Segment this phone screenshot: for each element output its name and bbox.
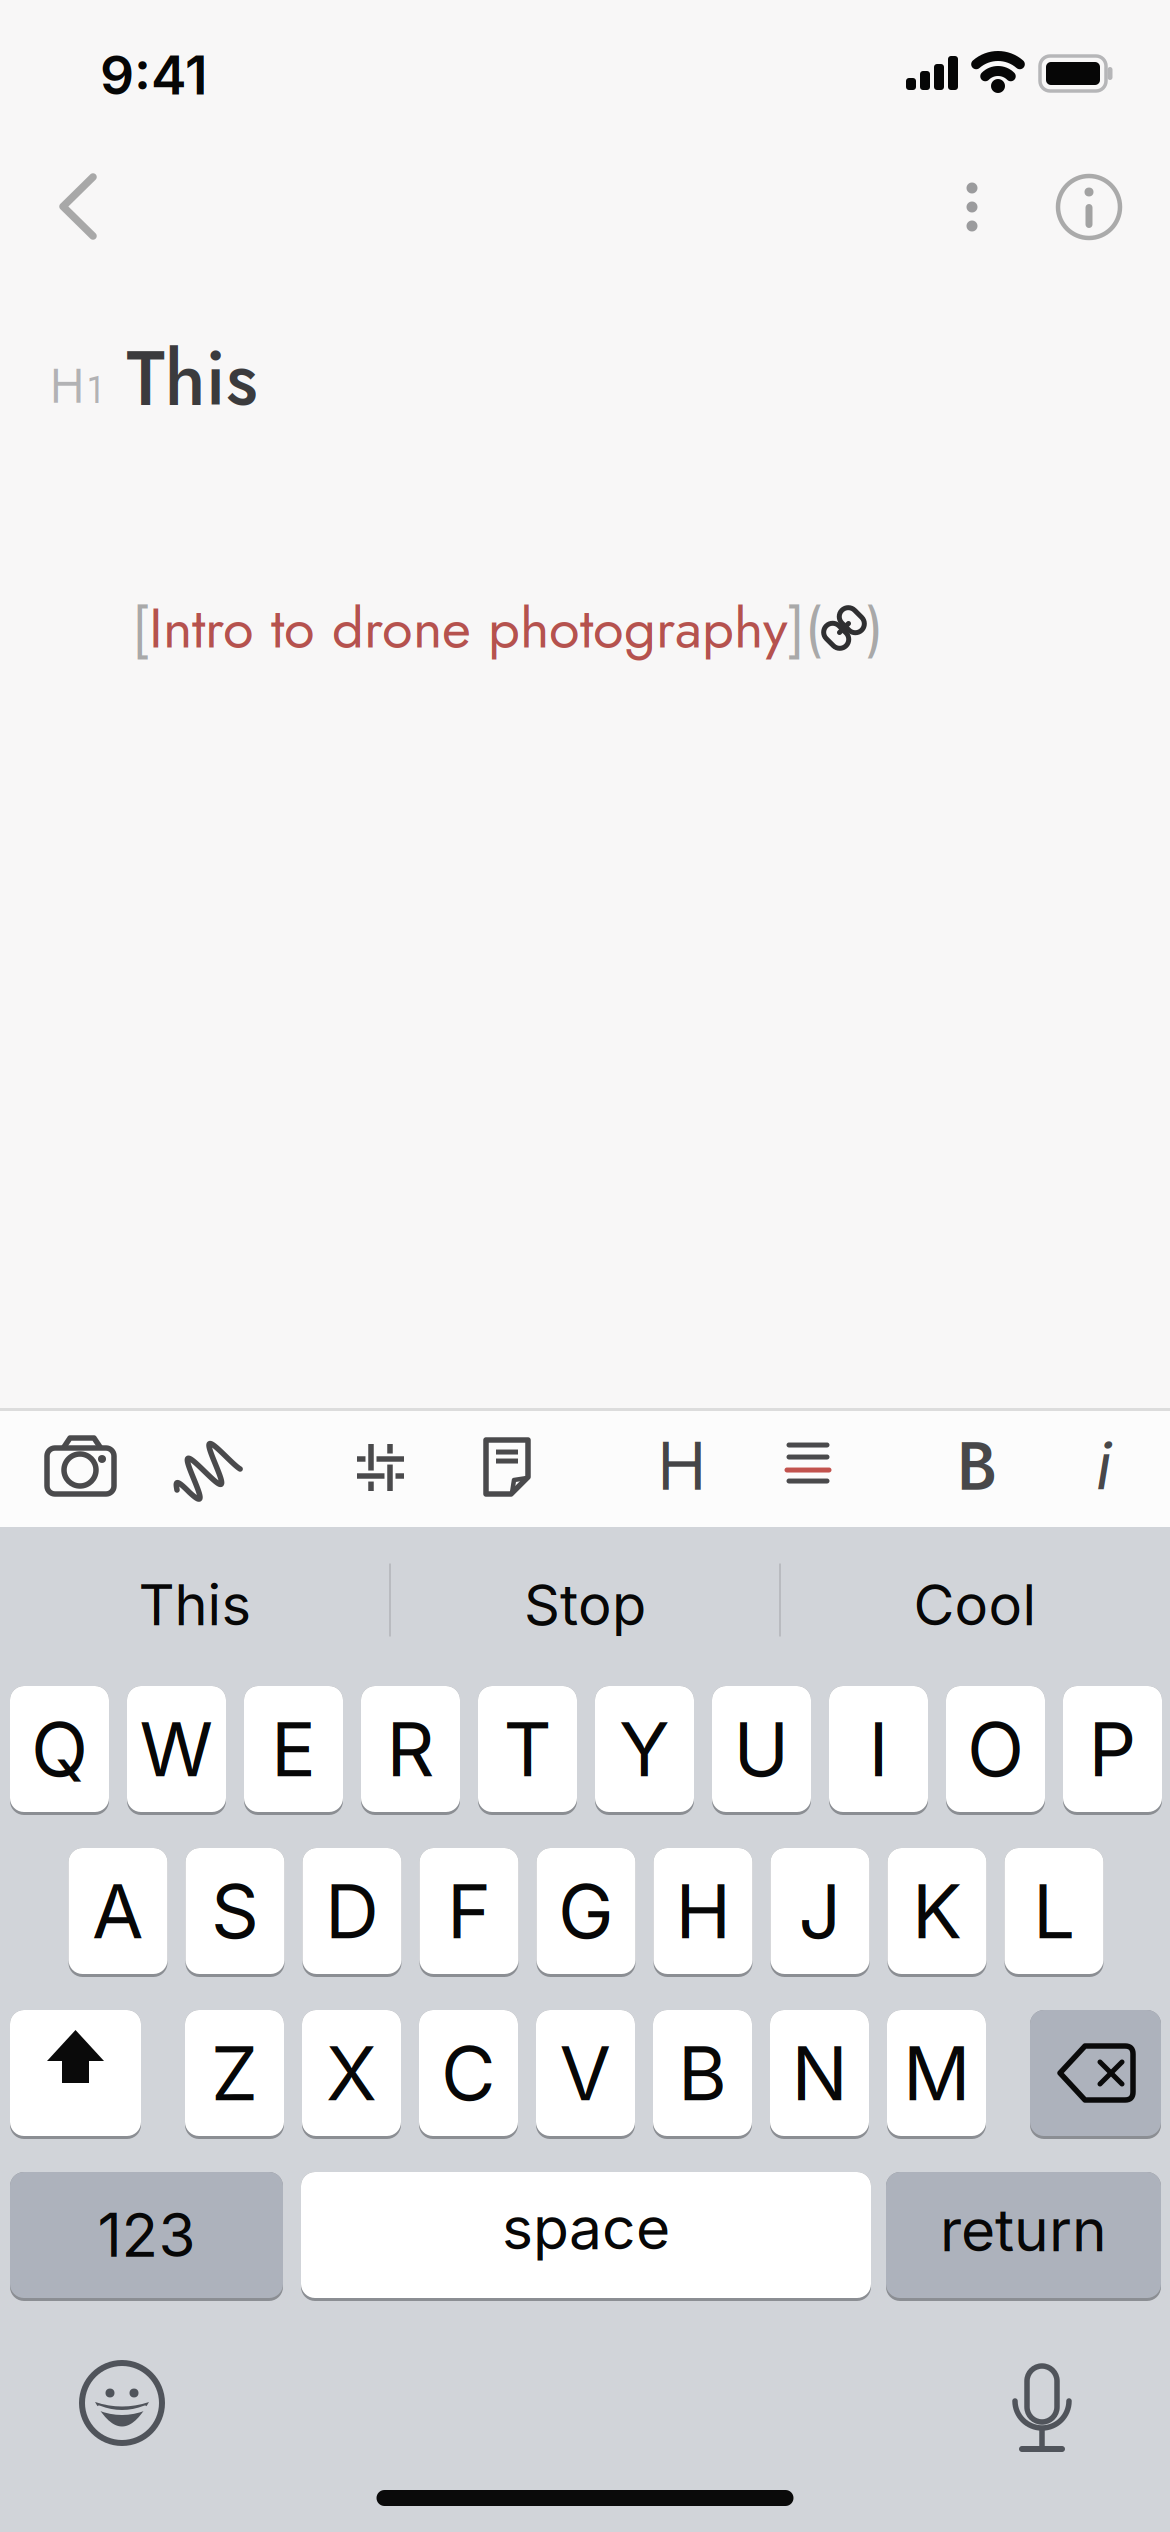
staticText: T [503,1704,551,1794]
staticText: G [558,1866,614,1956]
button[interactable]: Italic [1074,1434,1134,1498]
button[interactable]: Stop [395,1549,775,1661]
button[interactable]: Cool [785,1549,1165,1661]
staticText: E [271,1704,316,1794]
button[interactable]: P [1063,1686,1162,1815]
staticText: ( [805,587,822,668]
staticText: Q [31,1704,88,1794]
button[interactable]: U [712,1686,811,1815]
staticText: [ [132,587,149,668]
button[interactable]: C [419,2010,518,2139]
staticText: Cool [913,1571,1036,1639]
button[interactable]: A [68,1848,167,1977]
staticText: 9:41 [100,43,208,107]
button[interactable]: B [653,2010,752,2139]
staticText: ] [788,587,805,668]
staticText: U [733,1704,789,1794]
staticText: J [798,1866,841,1956]
button[interactable]: H [653,1848,752,1977]
button[interactable]: F [419,1848,518,1977]
button[interactable]: List [770,1436,846,1500]
staticText: F [447,1866,491,1956]
button[interactable]: X [302,2010,401,2139]
button[interactable]: Dictate [1002,2355,1082,2455]
button[interactable]: W [127,1686,226,1815]
button[interactable]: E [244,1686,343,1815]
button[interactable]: Sketch [166,1436,242,1500]
button[interactable]: space [301,2172,871,2301]
staticText: V [559,2028,611,2118]
staticText: Z [211,2028,258,2118]
staticText: This [138,1571,251,1639]
button[interactable]: Emoji [72,2353,172,2453]
button[interactable]: K [887,1848,986,1977]
button[interactable]: Bold [939,1434,1015,1498]
staticText: space [502,2192,670,2263]
staticText: Y [619,1704,670,1794]
button[interactable]: R [361,1686,460,1815]
staticText: Intro to drone photography [149,587,788,668]
staticText: H [657,1417,706,1515]
button[interactable]: N [770,2010,869,2139]
button[interactable]: More [950,169,994,245]
button[interactable]: D [302,1848,401,1977]
button[interactable]: Info [1051,169,1127,245]
staticText: Stop [524,1571,646,1639]
staticText: H [675,1866,730,1956]
staticText: P [1088,1704,1136,1794]
button[interactable]: J [770,1848,869,1977]
button[interactable]: return [886,2172,1161,2301]
staticText: X [326,2028,377,2118]
staticText: L [1033,1866,1075,1956]
staticText: W [139,1704,213,1794]
button[interactable]: Note options [469,1435,545,1499]
button[interactable]: This [5,1549,385,1661]
button[interactable]: Shift [10,2010,141,2139]
button[interactable]: I [829,1686,928,1815]
button[interactable]: S [185,1848,284,1977]
button[interactable]: T [478,1686,577,1815]
button[interactable]: M [887,2010,986,2139]
staticText: i [1096,1427,1112,1505]
staticText: 123 [97,2199,195,2271]
staticText: A [92,1866,144,1956]
button[interactable]: Q [10,1686,109,1815]
staticText: M [903,2028,970,2118]
staticText: S [211,1866,259,1956]
staticText: I [868,1704,888,1794]
button[interactable]: V [536,2010,635,2139]
button[interactable]: L [1004,1848,1103,1977]
button[interactable]: G [536,1848,635,1977]
staticText: ) [866,587,883,668]
staticText: B [956,1417,997,1515]
button[interactable]: 123 [10,2172,283,2301]
staticText: R [386,1704,434,1794]
button[interactable]: Style options [344,1436,420,1500]
staticText: B [678,2028,727,2118]
staticText: D [325,1866,379,1956]
staticText: 1 [86,363,103,417]
button[interactable]: Y [595,1686,694,1815]
staticText: O [967,1704,1024,1794]
button[interactable]: Insert photo [44,1435,120,1499]
staticText: This [126,323,257,433]
button[interactable]: Back [47,167,109,247]
staticText: K [912,1866,962,1956]
staticText: return [940,2194,1107,2265]
staticText: C [441,2028,496,2118]
button[interactable]: Delete [1030,2010,1161,2139]
staticText: H [50,351,84,421]
staticText: N [791,2028,847,2118]
button[interactable]: Heading [644,1434,720,1498]
button[interactable]: Z [185,2010,284,2139]
button[interactable]: O [946,1686,1045,1815]
